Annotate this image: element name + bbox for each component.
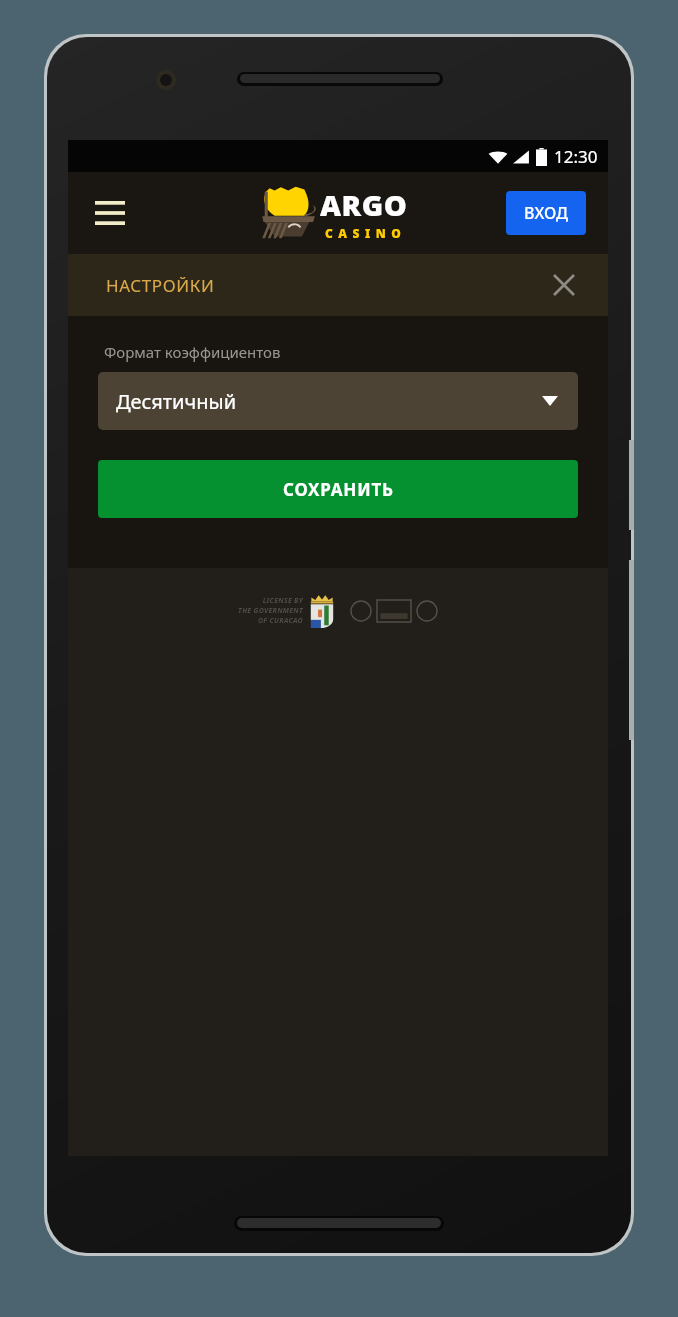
staticText: ВХОД <box>524 202 568 224</box>
staticText: СОХРАНИТЬ <box>283 478 394 501</box>
staticText: C A S I N O <box>325 225 403 241</box>
staticText: THE GOVERNMENT <box>238 606 303 616</box>
staticText: LICENSE BY <box>262 596 303 606</box>
staticText: НАСТРОЙКИ <box>106 274 215 297</box>
staticText: 12:30 <box>554 145 598 168</box>
button[interactable]: ВХОД <box>506 191 586 235</box>
staticText: Формат коэффициентов <box>104 342 281 362</box>
staticText: ARGO <box>320 185 408 224</box>
button[interactable]: Десятичный <box>98 372 578 430</box>
staticText: OF CURACAO <box>257 616 303 626</box>
staticText: Десятичный <box>116 388 237 415</box>
button[interactable]: СОХРАНИТЬ <box>98 460 578 518</box>
button[interactable]: Menu <box>86 189 134 237</box>
button[interactable]: Close <box>542 263 586 307</box>
